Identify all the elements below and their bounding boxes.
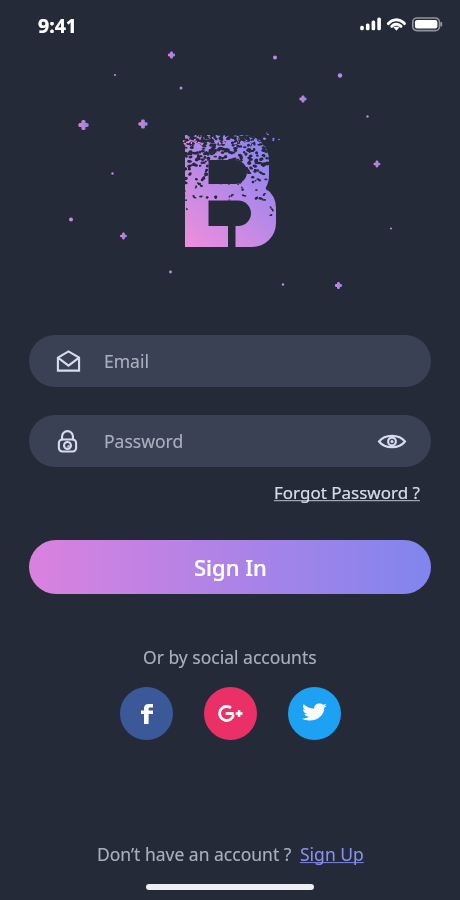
staticText: Sign In [194,552,267,582]
staticText: 9:41 [38,12,77,39]
staticText: Don’t have an account ? [97,842,292,866]
button[interactable]: Google Plus [204,687,257,740]
button[interactable]: Twitter [288,687,341,740]
button[interactable]: Facebook [120,687,173,740]
button[interactable]: Sign In [29,540,431,594]
button[interactable]: Email [29,335,431,387]
button[interactable]: Forgot Password ? [272,479,422,506]
staticText: Password [104,429,184,453]
staticText: Sign Up [300,842,364,866]
staticText: Forgot Password ? [274,481,420,504]
button[interactable]: Password [29,415,431,467]
staticText: Email [104,349,149,373]
staticText: Or by social accounts [143,645,317,669]
button[interactable]: Sign Up [300,842,364,866]
button[interactable]: Show password [366,415,418,467]
